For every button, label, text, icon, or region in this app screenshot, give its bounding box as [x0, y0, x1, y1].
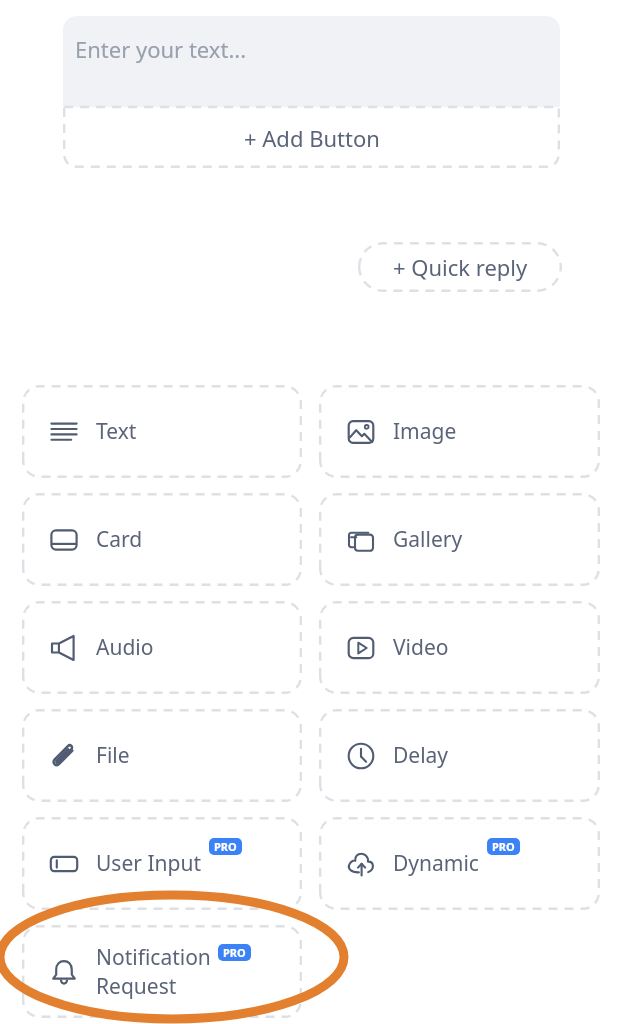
- staticText: Request: [96, 972, 177, 1001]
- button[interactable]: Text: [22, 385, 302, 478]
- staticText: + Quick reply: [393, 252, 528, 282]
- staticText: Dynamic: [393, 849, 479, 878]
- staticText: Card: [96, 525, 143, 554]
- staticText: Gallery: [393, 525, 463, 554]
- button[interactable]: Audio: [22, 601, 302, 694]
- staticText: PRO: [492, 839, 515, 854]
- button[interactable]: File: [22, 709, 302, 802]
- button[interactable]: + Add Button: [63, 107, 560, 168]
- staticText: File: [96, 741, 130, 770]
- button[interactable]: Enter your text...: [63, 16, 560, 107]
- button[interactable]: Card: [22, 493, 302, 586]
- button[interactable]: Video: [319, 601, 600, 694]
- button[interactable]: Delay: [319, 709, 600, 802]
- staticText: Image: [393, 417, 457, 446]
- button[interactable]: Gallery: [319, 493, 600, 586]
- button[interactable]: Dynamic: [319, 817, 600, 910]
- staticText: PRO: [223, 945, 246, 960]
- staticText: Enter your text...: [75, 34, 247, 64]
- staticText: Notification: [96, 943, 211, 972]
- staticText: + Add Button: [244, 123, 380, 153]
- staticText: Text: [96, 417, 137, 446]
- button[interactable]: Image: [319, 385, 600, 478]
- button[interactable]: Notification Request: [22, 925, 302, 1018]
- staticText: Delay: [393, 741, 449, 770]
- staticText: Audio: [96, 633, 154, 662]
- staticText: Video: [393, 633, 449, 662]
- button[interactable]: + Quick reply: [358, 242, 562, 292]
- button[interactable]: User Input: [22, 817, 302, 910]
- staticText: PRO: [214, 839, 237, 854]
- staticText: User Input: [96, 849, 201, 878]
